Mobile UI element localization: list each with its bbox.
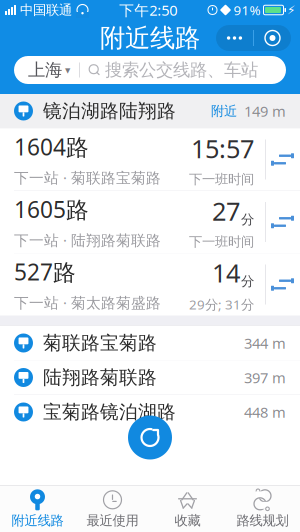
staticText: 29分; 31分 bbox=[189, 295, 254, 313]
button[interactable]: 路线规划 bbox=[225, 486, 300, 532]
button[interactable]: 菊联路宝菊路 bbox=[0, 326, 300, 360]
button[interactable]: 527路 bbox=[0, 253, 300, 315]
button[interactable]: 陆翔路菊联路 bbox=[0, 360, 300, 394]
staticText: 附近 bbox=[211, 103, 237, 119]
staticText: 527路 bbox=[14, 257, 76, 287]
staticText: 宝菊路镜泊湖路 bbox=[43, 400, 176, 423]
staticText: 下一班时间 bbox=[189, 171, 254, 187]
staticText: 448 m bbox=[244, 402, 286, 422]
staticText: 分 bbox=[241, 273, 254, 289]
button[interactable]: 1604路 bbox=[0, 128, 300, 190]
staticText: 397 m bbox=[244, 368, 286, 387]
staticText: 下一站 · 菊联路宝菊路 bbox=[14, 168, 161, 187]
staticText: 路线规划 bbox=[236, 512, 288, 529]
staticText: 91% bbox=[233, 1, 260, 19]
button[interactable]: 更多 bbox=[216, 25, 253, 51]
staticText: 下一站 · 陆翔路菊联路 bbox=[14, 230, 161, 250]
staticText: 菊联路宝菊路 bbox=[43, 331, 157, 354]
button[interactable]: 宝菊路镜泊湖路 bbox=[0, 395, 300, 429]
staticText: 1605路 bbox=[14, 194, 89, 224]
staticText: 下一班时间 bbox=[189, 234, 254, 250]
staticText: 收藏 bbox=[174, 512, 200, 529]
staticText: 149 m bbox=[244, 101, 286, 121]
button[interactable]: 收藏 bbox=[150, 486, 225, 532]
staticText: 14 bbox=[212, 256, 240, 289]
staticText: 最近使用 bbox=[86, 512, 138, 529]
staticText: 1604路 bbox=[14, 132, 89, 162]
staticText: 陆翔路菊联路 bbox=[43, 366, 157, 389]
staticText: 镜泊湖路陆翔路 bbox=[43, 99, 176, 122]
staticText: ▾ bbox=[65, 64, 70, 76]
button[interactable]: 定位 bbox=[254, 25, 291, 51]
button[interactable]: 1605路 bbox=[0, 191, 300, 253]
staticText: 15:57 bbox=[191, 131, 254, 165]
staticText: ⚡︎ bbox=[287, 3, 295, 17]
button[interactable]: 附近线路 bbox=[0, 486, 75, 532]
button[interactable]: 上海 bbox=[14, 56, 286, 84]
staticText: 中国联通 bbox=[20, 2, 72, 18]
staticText: 附近线路 bbox=[11, 512, 63, 529]
button[interactable]: 最近使用 bbox=[75, 486, 150, 532]
staticText: 344 m bbox=[244, 333, 286, 353]
staticText: 27 bbox=[212, 194, 240, 228]
staticText: 搜索公交线路、车站 bbox=[105, 59, 258, 81]
staticText: 下一站 · 菊太路菊盛路 bbox=[14, 293, 161, 312]
staticText: 上海 bbox=[28, 59, 62, 81]
staticText: 分 bbox=[241, 211, 254, 228]
staticText: 附近线路 bbox=[100, 22, 200, 53]
button[interactable]: 刷新 bbox=[128, 415, 172, 459]
button[interactable]: 镜泊湖路陆翔路 bbox=[0, 94, 300, 128]
staticText: 下午2:50 bbox=[119, 0, 177, 20]
